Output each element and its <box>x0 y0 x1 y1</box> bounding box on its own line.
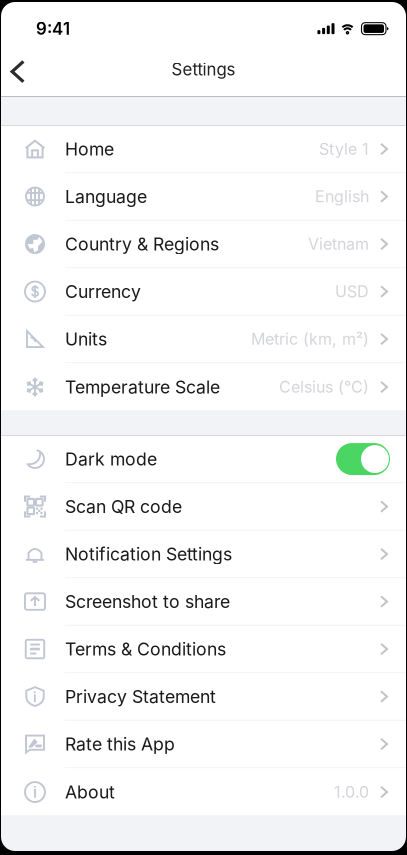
staticText: 9:41 <box>36 18 70 39</box>
button[interactable]: S <box>1 268 406 316</box>
button[interactable]: Scan QR code <box>1 483 406 531</box>
staticText: Notification Settings <box>65 543 232 565</box>
button[interactable]: i <box>1 768 406 816</box>
staticText: Terms & Conditions <box>65 638 226 660</box>
staticText: USD <box>335 282 369 301</box>
staticText: 1.0.0 <box>334 782 369 802</box>
button[interactable]: Units <box>1 316 406 363</box>
staticText: S <box>30 283 39 300</box>
staticText: Country & Regions <box>65 233 219 255</box>
staticText: Currency <box>65 281 141 302</box>
staticText: Vietnam <box>308 234 369 254</box>
button[interactable]: Dark mode <box>1 436 406 483</box>
staticText: Rate this App <box>65 733 175 755</box>
staticText: About <box>65 781 115 803</box>
staticText: i <box>33 689 37 705</box>
staticText: Scan QR code <box>65 496 182 517</box>
staticText: Style 1 <box>319 139 369 159</box>
staticText: Metric (km, m²) <box>251 329 369 349</box>
staticText: Home <box>65 138 114 160</box>
staticText: Language <box>65 186 147 207</box>
button[interactable]: Screenshot to share <box>1 578 406 626</box>
button[interactable]: Notification Settings <box>1 531 406 578</box>
button[interactable]: Back <box>1 47 43 97</box>
button[interactable]: Home <box>1 126 406 173</box>
button[interactable]: Terms & Conditions <box>1 626 406 673</box>
staticText: Celsius (°C) <box>279 377 369 397</box>
button[interactable]: Rate this App <box>1 721 406 768</box>
button[interactable]: i <box>1 673 406 721</box>
button[interactable]: Temperature Scale <box>1 363 406 411</box>
staticText: Screenshot to share <box>65 591 230 612</box>
staticText: Privacy Statement <box>65 686 216 707</box>
button[interactable]: Country & Regions <box>1 221 406 268</box>
staticText: Settings <box>171 59 235 80</box>
staticText: Temperature Scale <box>65 376 220 398</box>
staticText: i <box>33 783 37 801</box>
staticText: Dark mode <box>65 448 157 470</box>
staticText: Units <box>65 328 107 350</box>
button[interactable]: Language <box>1 173 406 221</box>
staticText: English <box>315 187 369 206</box>
